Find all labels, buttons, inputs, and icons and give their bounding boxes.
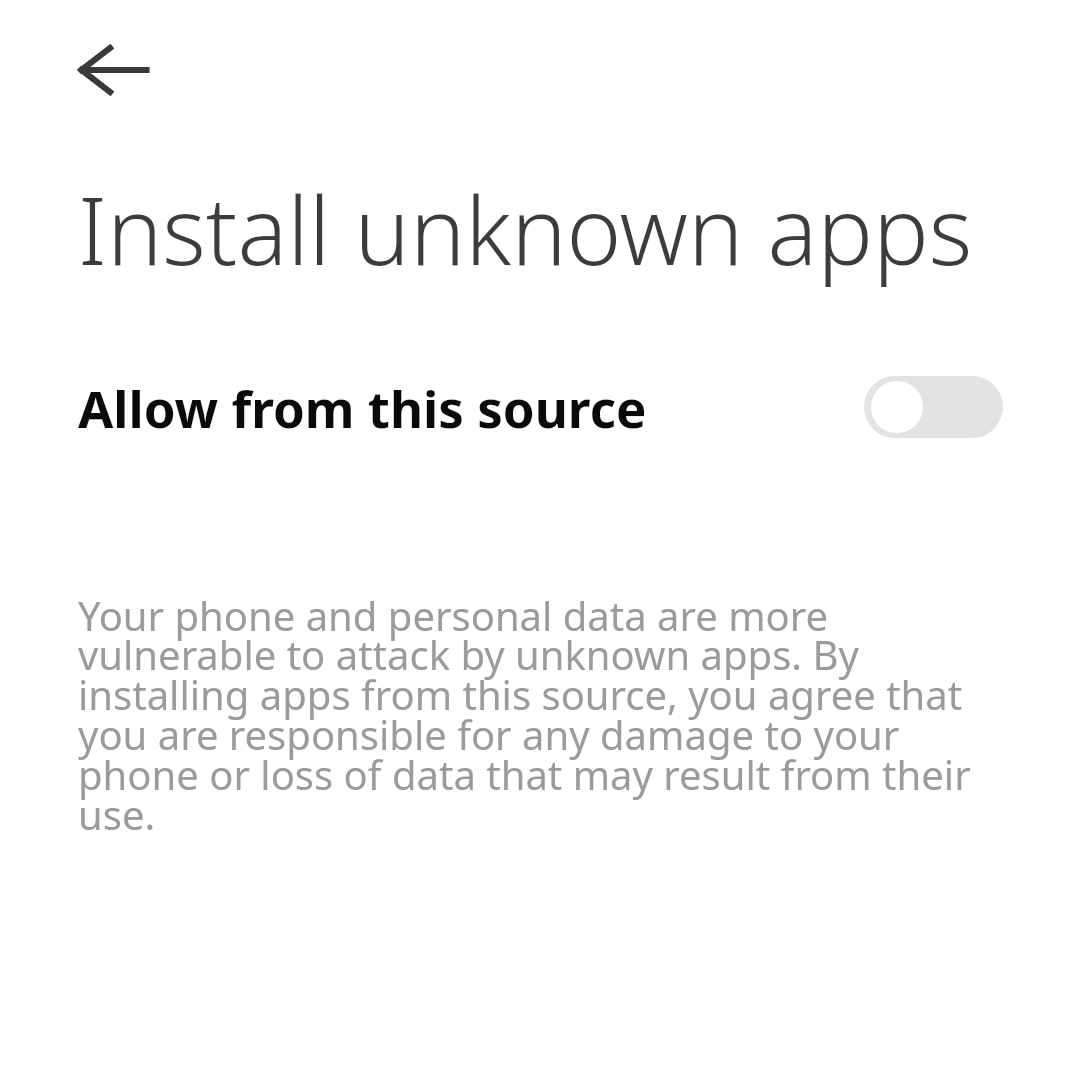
staticText: Allow from this source [78, 373, 647, 442]
button[interactable]: Back [66, 22, 162, 118]
button[interactable]: Allow from this source [0, 356, 1080, 458]
staticText: Install unknown apps [78, 166, 1028, 293]
staticText: Your phone and personal data are more vu… [78, 588, 1000, 842]
